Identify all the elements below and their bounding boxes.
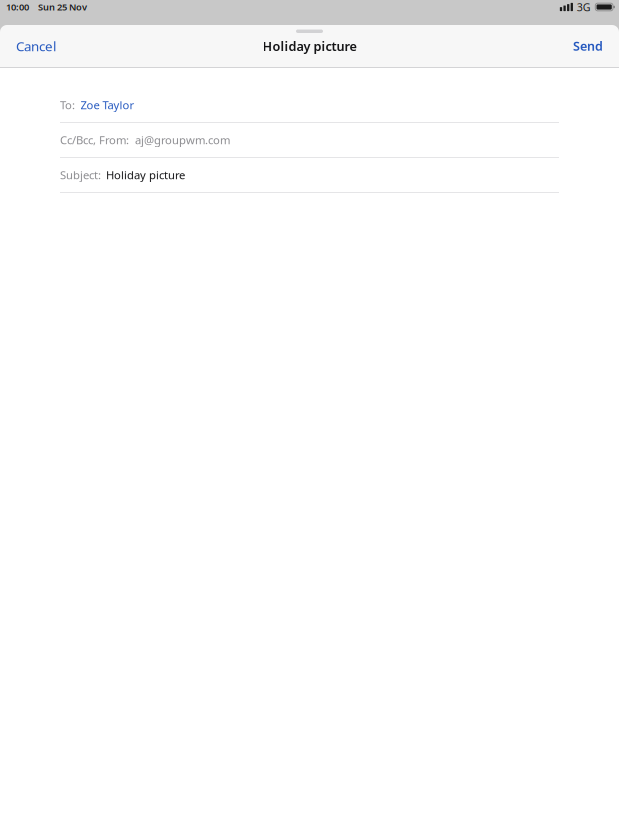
staticText: 3G (577, 0, 591, 14)
button[interactable]: Cc/Bcc, From: (0, 123, 619, 158)
staticText: aj@groupwm.com (135, 132, 230, 148)
staticText: Holiday picture (106, 167, 185, 183)
button[interactable]: Subject: (0, 158, 619, 193)
staticText: Cc/Bcc, From: (60, 132, 129, 148)
staticText: Send (573, 37, 603, 55)
staticText: Holiday picture (262, 37, 356, 55)
button[interactable]: Send (557, 31, 619, 61)
staticText: Subject: (60, 167, 101, 183)
staticText: 10:00 (6, 1, 29, 13)
button[interactable]: Cancel (0, 31, 72, 61)
staticText: Cancel (16, 37, 56, 55)
staticText: To: (60, 97, 75, 113)
staticText: Sun 25 Nov (38, 1, 87, 13)
button[interactable]: To: (0, 88, 619, 123)
staticText: Zoe Taylor (80, 97, 134, 113)
